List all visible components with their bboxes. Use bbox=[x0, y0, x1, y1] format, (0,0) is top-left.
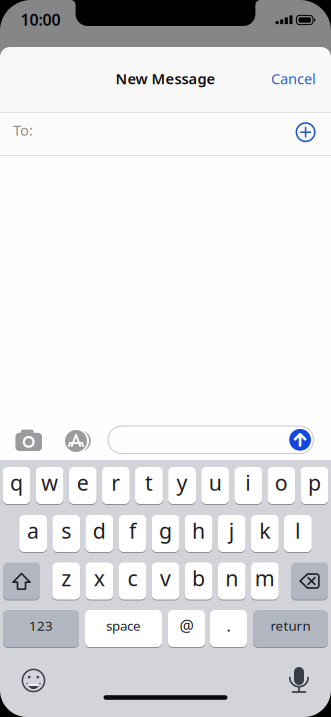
button[interactable]: Cancel bbox=[258, 63, 328, 93]
button[interactable]: u bbox=[201, 466, 229, 504]
staticText: x bbox=[94, 564, 105, 592]
button[interactable]: y bbox=[168, 466, 196, 504]
button[interactable]: w bbox=[36, 466, 64, 504]
button[interactable]: e bbox=[69, 466, 97, 504]
staticText: q bbox=[10, 468, 23, 497]
button[interactable]: j bbox=[218, 514, 246, 552]
button[interactable]: r bbox=[102, 466, 130, 504]
button[interactable]: l bbox=[284, 514, 312, 552]
staticText: u bbox=[209, 468, 222, 497]
button[interactable]: . bbox=[210, 609, 247, 647]
button[interactable]: Message field bbox=[108, 426, 314, 454]
staticText: @ bbox=[179, 615, 193, 636]
button[interactable]: t bbox=[135, 466, 163, 504]
staticText: t bbox=[145, 468, 153, 497]
button[interactable]: k bbox=[251, 514, 279, 552]
staticText: l bbox=[295, 516, 301, 545]
staticText: e bbox=[77, 468, 89, 497]
staticText: Cancel bbox=[271, 69, 316, 88]
staticText: To: bbox=[13, 120, 33, 140]
button[interactable]: i bbox=[234, 466, 262, 504]
button[interactable]: n bbox=[218, 562, 246, 600]
staticText: d bbox=[93, 516, 106, 545]
staticText: p bbox=[308, 468, 321, 497]
button[interactable]: f bbox=[118, 514, 146, 552]
staticText: n bbox=[225, 564, 238, 592]
staticText: 10:00 bbox=[20, 9, 60, 30]
staticText: k bbox=[259, 516, 270, 545]
button[interactable]: x bbox=[85, 562, 113, 600]
button[interactable]: s bbox=[52, 514, 80, 552]
staticText: 123 bbox=[29, 617, 53, 634]
staticText: w bbox=[41, 468, 58, 497]
staticText: New Message bbox=[115, 69, 215, 88]
button[interactable]: g bbox=[152, 514, 179, 552]
button[interactable]: Add Contact bbox=[290, 116, 322, 148]
staticText: z bbox=[61, 564, 71, 592]
staticText: g bbox=[159, 516, 172, 545]
button[interactable]: m bbox=[251, 562, 279, 600]
staticText: v bbox=[160, 564, 171, 592]
button[interactable]: Emoji bbox=[18, 665, 48, 695]
button[interactable]: b bbox=[185, 562, 212, 600]
button[interactable]: Dictate bbox=[284, 664, 314, 694]
button[interactable]: @ bbox=[168, 609, 205, 647]
button[interactable]: o bbox=[267, 466, 295, 504]
button[interactable]: h bbox=[185, 514, 212, 552]
staticText: c bbox=[127, 564, 137, 592]
staticText: . bbox=[226, 615, 230, 636]
staticText: h bbox=[192, 516, 205, 545]
button[interactable]: d bbox=[85, 514, 113, 552]
button[interactable]: p bbox=[301, 466, 328, 504]
button[interactable]: Delete bbox=[291, 562, 328, 600]
staticText: a bbox=[27, 516, 39, 545]
button[interactable]: Send bbox=[289, 429, 311, 451]
staticText: space bbox=[106, 617, 141, 634]
button[interactable]: space bbox=[85, 609, 162, 647]
staticText: r bbox=[111, 468, 120, 497]
button[interactable]: Apps bbox=[60, 425, 92, 457]
staticText: return bbox=[270, 617, 310, 634]
button[interactable]: c bbox=[118, 562, 146, 600]
button[interactable]: 123 bbox=[3, 609, 79, 647]
button[interactable]: Shift bbox=[3, 562, 40, 600]
button[interactable]: q bbox=[3, 466, 30, 504]
staticText: y bbox=[177, 468, 188, 497]
button[interactable]: v bbox=[152, 562, 179, 600]
staticText: m bbox=[255, 564, 275, 592]
staticText: s bbox=[61, 516, 71, 545]
staticText: b bbox=[192, 564, 205, 592]
staticText: f bbox=[129, 516, 136, 545]
staticText: i bbox=[245, 468, 251, 497]
staticText: o bbox=[275, 468, 288, 497]
button[interactable]: z bbox=[52, 562, 80, 600]
button[interactable]: return bbox=[253, 609, 328, 647]
button[interactable]: Camera bbox=[0, 0, 331, 717]
staticText: j bbox=[229, 516, 235, 545]
button[interactable]: a bbox=[19, 514, 47, 552]
